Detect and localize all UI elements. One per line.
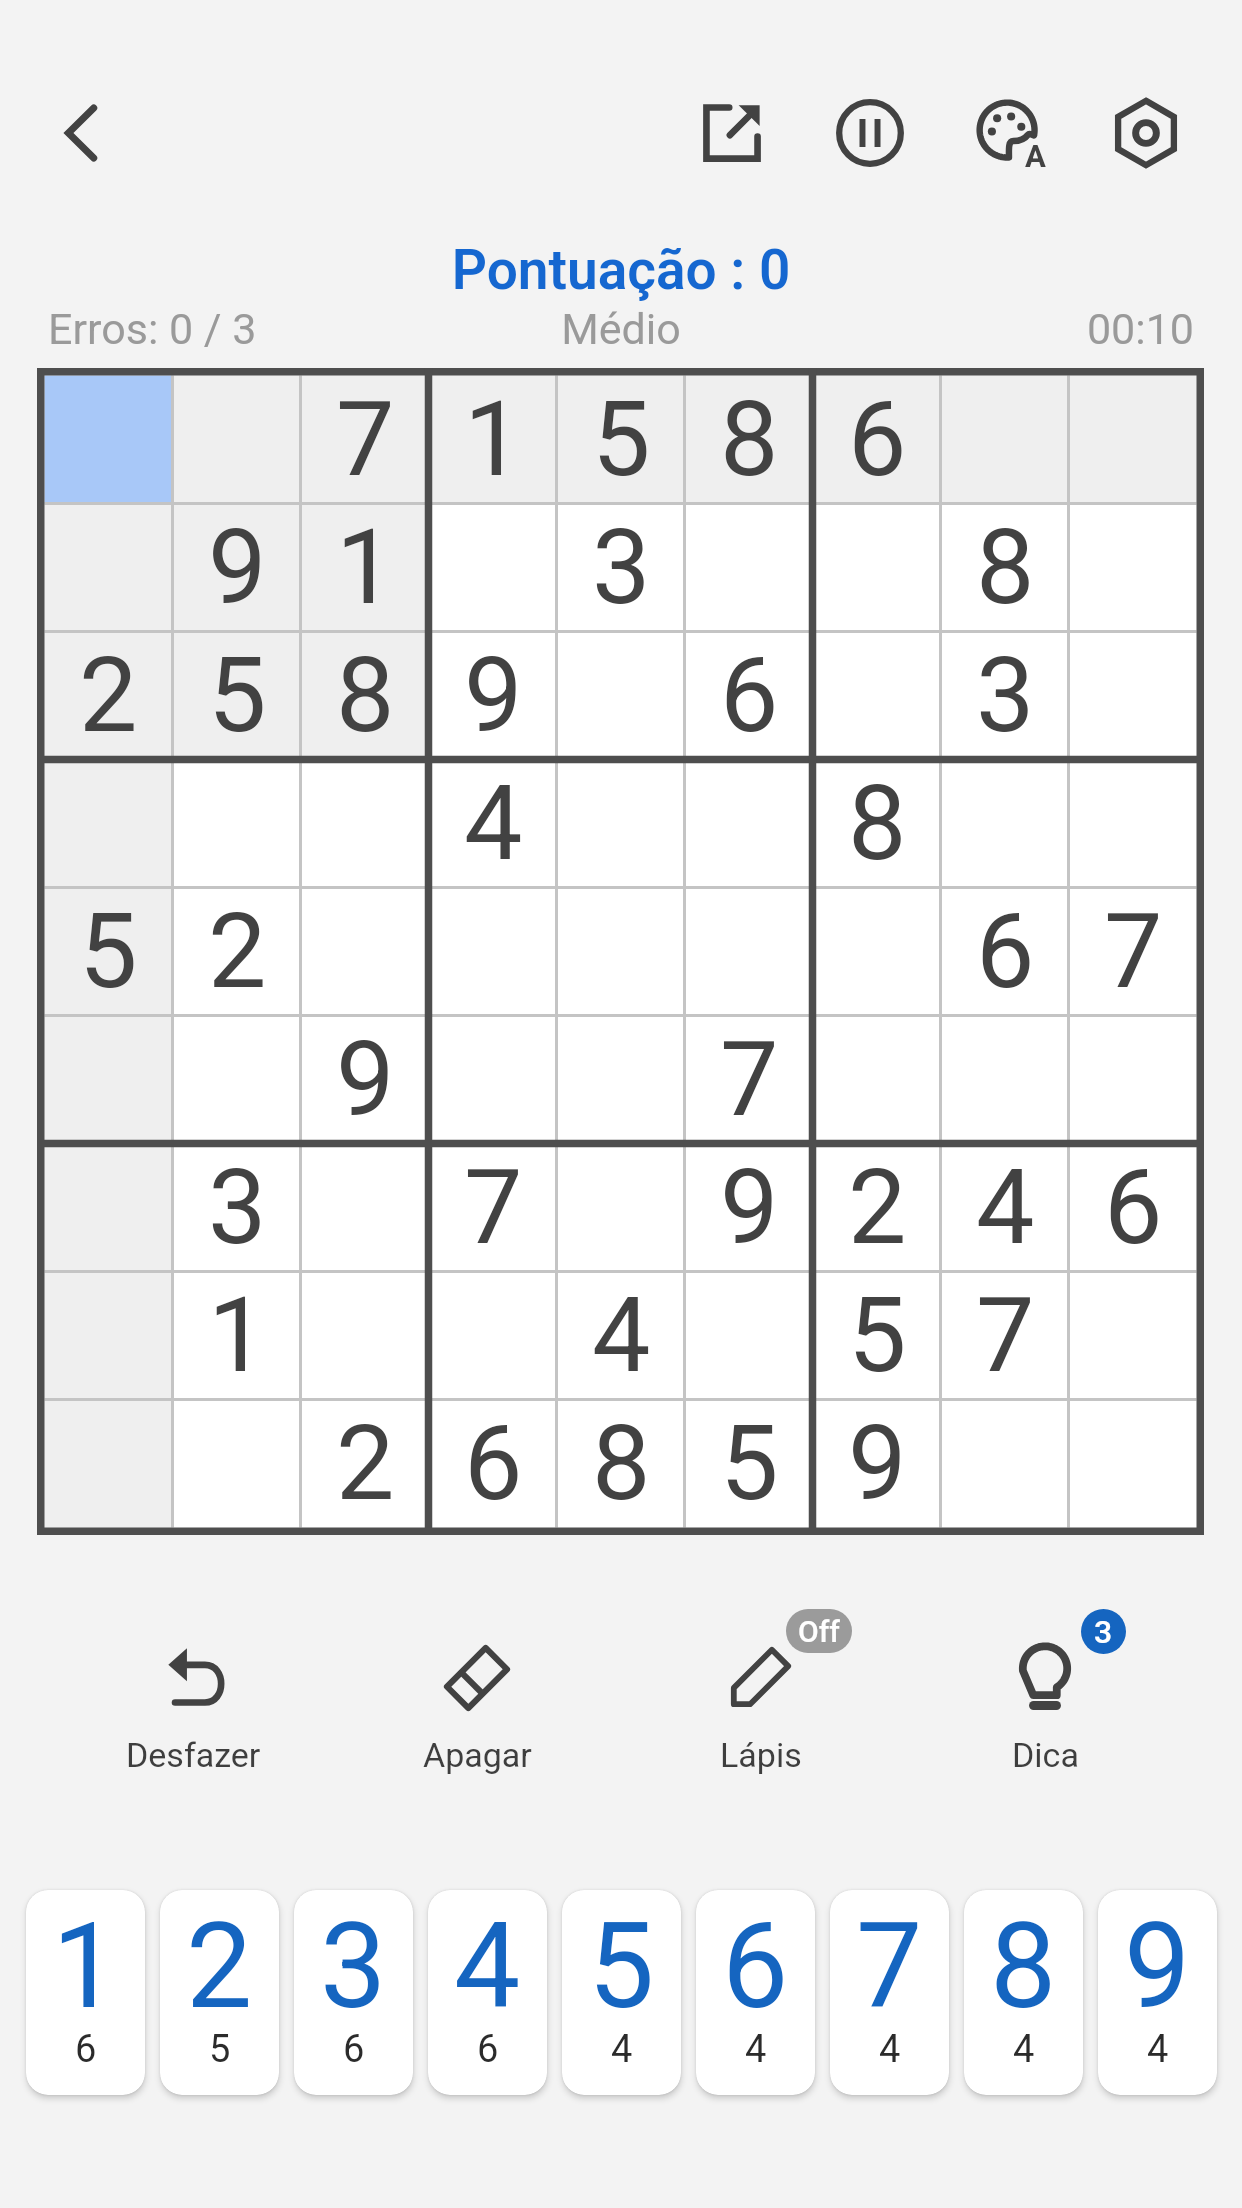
button[interactable]: Pause xyxy=(815,78,925,188)
button[interactable]: Cell row 2 column 2: 9 xyxy=(173,504,301,632)
button[interactable]: Settings xyxy=(1091,78,1201,188)
button[interactable]: Cell row 5 column 1: 5 xyxy=(44,888,173,1016)
button[interactable]: Cell row 7 column 8: 4 xyxy=(941,1144,1069,1272)
button[interactable]: Cell row 1 column 7: 6 xyxy=(813,375,941,504)
button[interactable]: Empty cell row 9 column 2 xyxy=(173,1400,301,1528)
button[interactable]: Empty cell row 4 column 8 xyxy=(941,760,1069,888)
button[interactable]: Empty cell row 5 column 7 xyxy=(813,888,941,1016)
button[interactable]: Cell row 7 column 7: 2 xyxy=(813,1144,941,1272)
button[interactable]: Cell row 5 column 2: 2 xyxy=(173,888,301,1016)
button[interactable]: Empty cell row 2 column 9 xyxy=(1069,504,1197,632)
button[interactable]: Cell row 9 column 4: 6 xyxy=(429,1400,557,1528)
button[interactable]: Empty cell row 6 column 9 xyxy=(1069,1016,1197,1144)
button[interactable]: Cell row 9 column 6: 5 xyxy=(685,1400,813,1528)
button[interactable]: Cell row 1 column 3: 7 xyxy=(301,375,429,504)
button[interactable]: 2 xyxy=(160,1890,279,2095)
button[interactable]: Empty cell row 7 column 5 xyxy=(557,1144,685,1272)
button[interactable]: Empty cell row 1 column 1 xyxy=(44,375,173,504)
button[interactable]: 5 xyxy=(562,1890,681,2095)
button[interactable]: Empty cell row 1 column 8 xyxy=(941,375,1069,504)
button[interactable]: Cell row 1 column 4: 1 xyxy=(429,375,557,504)
button[interactable]: Desfazer xyxy=(51,1614,335,1775)
button[interactable]: Cell row 3 column 8: 3 xyxy=(941,632,1069,760)
button[interactable]: Apagar xyxy=(335,1614,619,1775)
button[interactable]: Empty cell row 8 column 4 xyxy=(429,1272,557,1400)
button[interactable]: Cell row 9 column 7: 9 xyxy=(813,1400,941,1528)
button[interactable]: Empty cell row 8 column 1 xyxy=(44,1272,173,1400)
button[interactable]: Cell row 1 column 6: 8 xyxy=(685,375,813,504)
button[interactable]: 1 xyxy=(26,1890,145,2095)
button[interactable]: Empty cell row 7 column 1 xyxy=(44,1144,173,1272)
button[interactable]: 7 xyxy=(830,1890,949,2095)
button[interactable]: Cell row 7 column 4: 7 xyxy=(429,1144,557,1272)
button[interactable]: Cell row 8 column 7: 5 xyxy=(813,1272,941,1400)
button[interactable]: Empty cell row 4 column 2 xyxy=(173,760,301,888)
button[interactable]: Empty cell row 4 column 5 xyxy=(557,760,685,888)
button[interactable]: Empty cell row 6 column 4 xyxy=(429,1016,557,1144)
button[interactable]: Empty cell row 9 column 8 xyxy=(941,1400,1069,1528)
button[interactable]: Empty cell row 3 column 9 xyxy=(1069,632,1197,760)
button[interactable]: Empty cell row 2 column 7 xyxy=(813,504,941,632)
button[interactable]: Empty cell row 7 column 3 xyxy=(301,1144,429,1272)
button[interactable]: Cell row 8 column 2: 1 xyxy=(173,1272,301,1400)
button[interactable]: Empty cell row 8 column 3 xyxy=(301,1272,429,1400)
staticText: 5 xyxy=(79,891,138,1013)
button[interactable]: Cell row 4 column 4: 4 xyxy=(429,760,557,888)
button[interactable]: Cell row 3 column 3: 8 xyxy=(301,632,429,760)
button[interactable]: Empty cell row 8 column 6 xyxy=(685,1272,813,1400)
button[interactable]: Empty cell row 6 column 5 xyxy=(557,1016,685,1144)
button[interactable]: Empty cell row 2 column 4 xyxy=(429,504,557,632)
button[interactable]: 9 xyxy=(1098,1890,1217,2095)
button[interactable]: Empty cell row 2 column 6 xyxy=(685,504,813,632)
button[interactable]: Empty cell row 6 column 7 xyxy=(813,1016,941,1144)
button[interactable]: Empty cell row 1 column 2 xyxy=(173,375,301,504)
button[interactable]: Share xyxy=(677,78,787,188)
button[interactable]: Empty cell row 9 column 1 xyxy=(44,1400,173,1528)
button[interactable]: Empty cell row 4 column 6 xyxy=(685,760,813,888)
button[interactable]: Cell row 5 column 8: 6 xyxy=(941,888,1069,1016)
button[interactable]: Empty cell row 6 column 2 xyxy=(173,1016,301,1144)
button[interactable]: Empty cell row 5 column 6 xyxy=(685,888,813,1016)
button[interactable]: Empty cell row 6 column 8 xyxy=(941,1016,1069,1144)
button[interactable]: Empty cell row 6 column 1 xyxy=(44,1016,173,1144)
button[interactable]: Cell row 2 column 8: 8 xyxy=(941,504,1069,632)
button[interactable]: Cell row 7 column 6: 9 xyxy=(685,1144,813,1272)
button[interactable]: Empty cell row 9 column 9 xyxy=(1069,1400,1197,1528)
button[interactable]: Cell row 3 column 1: 2 xyxy=(44,632,173,760)
button[interactable]: Cell row 2 column 3: 1 xyxy=(301,504,429,632)
button[interactable]: Cell row 9 column 5: 8 xyxy=(557,1400,685,1528)
button[interactable]: Back xyxy=(26,78,136,188)
button[interactable]: Cell row 1 column 5: 5 xyxy=(557,375,685,504)
button[interactable]: Cell row 5 column 9: 7 xyxy=(1069,888,1197,1016)
button[interactable]: Theme xyxy=(953,78,1063,188)
button[interactable]: Empty cell row 3 column 5 xyxy=(557,632,685,760)
button[interactable]: Empty cell row 5 column 3 xyxy=(301,888,429,1016)
button[interactable]: Cell row 2 column 5: 3 xyxy=(557,504,685,632)
button[interactable]: 3 xyxy=(903,1614,1187,1775)
button[interactable]: Cell row 3 column 4: 9 xyxy=(429,632,557,760)
button[interactable]: 3 xyxy=(294,1890,413,2095)
button[interactable]: Cell row 3 column 2: 5 xyxy=(173,632,301,760)
button[interactable]: Empty cell row 5 column 5 xyxy=(557,888,685,1016)
button[interactable]: Empty cell row 2 column 1 xyxy=(44,504,173,632)
button[interactable]: Empty cell row 1 column 9 xyxy=(1069,375,1197,504)
button[interactable]: 4 xyxy=(428,1890,547,2095)
button[interactable]: 6 xyxy=(696,1890,815,2095)
button[interactable]: Cell row 6 column 3: 9 xyxy=(301,1016,429,1144)
button[interactable]: Empty cell row 3 column 7 xyxy=(813,632,941,760)
button[interactable]: Empty cell row 4 column 1 xyxy=(44,760,173,888)
button[interactable]: Empty cell row 5 column 4 xyxy=(429,888,557,1016)
button[interactable]: Cell row 8 column 8: 7 xyxy=(941,1272,1069,1400)
button[interactable]: Cell row 3 column 6: 6 xyxy=(685,632,813,760)
button[interactable]: Cell row 4 column 7: 8 xyxy=(813,760,941,888)
button[interactable]: Empty cell row 8 column 9 xyxy=(1069,1272,1197,1400)
button[interactable]: Cell row 6 column 6: 7 xyxy=(685,1016,813,1144)
button[interactable]: Cell row 8 column 5: 4 xyxy=(557,1272,685,1400)
button[interactable]: 8 xyxy=(964,1890,1083,2095)
button[interactable]: Cell row 7 column 9: 6 xyxy=(1069,1144,1197,1272)
button[interactable]: Empty cell row 4 column 9 xyxy=(1069,760,1197,888)
button[interactable]: Off xyxy=(619,1614,903,1775)
button[interactable]: Cell row 7 column 2: 3 xyxy=(173,1144,301,1272)
button[interactable]: Empty cell row 4 column 3 xyxy=(301,760,429,888)
button[interactable]: Cell row 9 column 3: 2 xyxy=(301,1400,429,1528)
